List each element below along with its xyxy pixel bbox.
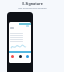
- staticText: Sign documents from anywhere: [18, 7, 47, 10]
- staticText: E-Signature: [22, 1, 43, 6]
